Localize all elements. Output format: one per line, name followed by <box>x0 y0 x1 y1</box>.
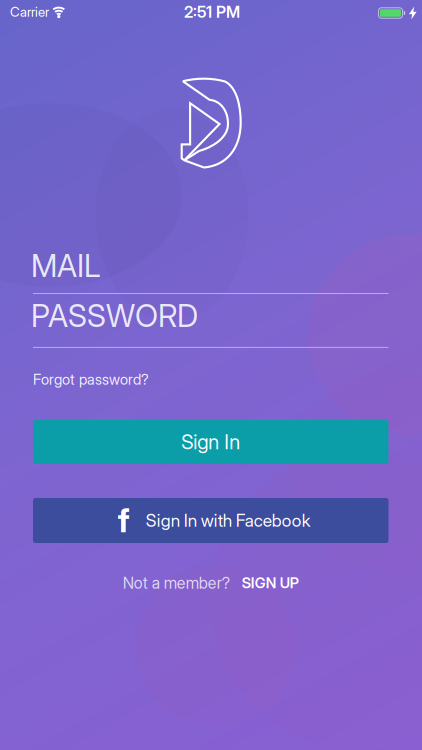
staticText: 2:51 PM <box>184 3 240 21</box>
staticText: f <box>118 502 130 539</box>
staticText: Carrier <box>10 4 49 20</box>
staticText: Forgot password? <box>33 371 149 388</box>
staticText: Sign In with Facebook <box>146 510 311 531</box>
button[interactable]: SIGN UP <box>242 574 299 592</box>
staticText: SIGN UP <box>242 574 299 592</box>
button[interactable]: Mail <box>33 246 388 296</box>
button[interactable]: Password <box>33 300 388 350</box>
staticText: PASSWORD <box>31 298 198 334</box>
staticText: MAIL <box>31 248 100 284</box>
button[interactable]: Forgot password? <box>33 371 149 388</box>
staticText: Not a member? <box>123 574 230 592</box>
button[interactable]: Sign In <box>33 420 388 464</box>
button[interactable]: f <box>33 498 388 543</box>
staticText: Sign In <box>181 430 240 454</box>
